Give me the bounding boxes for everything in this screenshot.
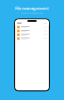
staticText: Organise everything in one place <box>20 12 43 14</box>
button[interactable] <box>17 29 47 32</box>
button[interactable] <box>17 33 47 36</box>
button[interactable] <box>17 26 47 29</box>
button[interactable] <box>17 37 47 40</box>
staticText: File management <box>15 6 49 11</box>
